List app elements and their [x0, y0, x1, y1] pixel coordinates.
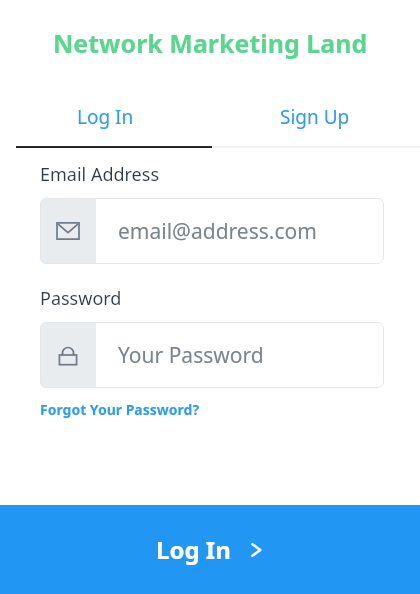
button[interactable]: Forgot Your Password? — [40, 400, 200, 419]
staticText: Log In — [156, 533, 231, 566]
button[interactable]: Password icon — [40, 322, 384, 388]
button[interactable]: Sign Up — [210, 86, 420, 148]
staticText: Log In — [77, 104, 134, 130]
staticText: Sign Up — [280, 104, 350, 130]
staticText: Email Address — [40, 162, 160, 187]
staticText: Forgot Your Password? — [40, 400, 200, 419]
staticText: Your Password — [118, 341, 264, 370]
button[interactable]: Email icon — [40, 198, 384, 264]
staticText: email@address.com — [118, 217, 317, 246]
staticText: Network Marketing Land — [53, 26, 368, 60]
button[interactable]: Log In — [0, 86, 210, 148]
other: Password icon — [40, 322, 96, 388]
staticText: Password — [40, 286, 122, 311]
button[interactable]: Log In — [0, 505, 420, 594]
other: Email icon — [40, 198, 96, 264]
